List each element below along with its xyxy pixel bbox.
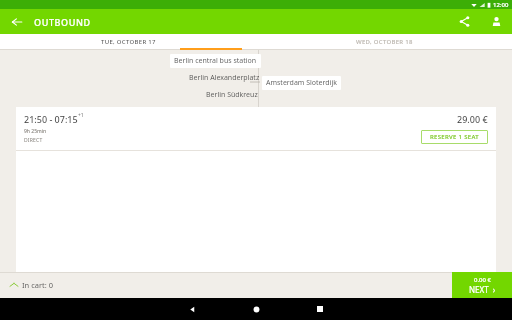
button[interactable]: RESERVE 1 SEAT xyxy=(421,130,488,144)
staticText: NEXT › xyxy=(469,284,496,295)
staticText: 29.00 € xyxy=(457,113,488,125)
staticText: Berlin Südkreuz xyxy=(206,90,258,100)
button[interactable]: Home xyxy=(224,298,288,320)
staticText: DIRECT xyxy=(24,137,43,144)
staticText: 0.00 € xyxy=(474,276,491,284)
button[interactable]: Amsterdam Sloterdijk xyxy=(262,76,341,90)
staticText: 12:00 xyxy=(493,1,509,9)
staticText: In cart: 0 xyxy=(22,280,53,290)
staticText: 21:50 - 07:15 xyxy=(24,113,78,125)
staticText: TUE, OCTOBER 17 xyxy=(101,38,156,46)
staticText: Amsterdam Sloterdijk xyxy=(266,78,337,88)
staticText: 9h 25min xyxy=(24,128,47,135)
staticText: OUTBOUND xyxy=(34,16,91,28)
button[interactable]: TUE, OCTOBER 17 xyxy=(0,34,256,50)
button[interactable]: Berlin central bus station xyxy=(170,54,261,68)
button[interactable]: Berlin SXF xyxy=(219,105,260,107)
button[interactable]: Back xyxy=(0,9,34,34)
button[interactable]: Back xyxy=(160,298,224,320)
button[interactable]: 21:50 - 07:15 xyxy=(16,107,496,150)
staticText: RESERVE 1 SEAT xyxy=(430,133,479,141)
button[interactable]: 0.00 € xyxy=(452,272,512,298)
staticText: Berlin Alexanderplatz xyxy=(189,73,260,83)
button[interactable]: Berlin Alexanderplatz xyxy=(185,71,264,85)
button[interactable]: WED, OCTOBER 18 xyxy=(256,34,512,50)
staticText: +1 xyxy=(78,112,84,119)
button[interactable]: In cart: 0 xyxy=(8,276,55,294)
button[interactable]: Share xyxy=(448,9,480,34)
button[interactable]: Recents xyxy=(288,298,352,320)
button[interactable]: Berlin Südkreuz xyxy=(202,88,262,102)
button[interactable]: Account xyxy=(480,9,512,34)
staticText: WED, OCTOBER 18 xyxy=(356,38,413,46)
staticText: Berlin central bus station xyxy=(174,56,257,66)
